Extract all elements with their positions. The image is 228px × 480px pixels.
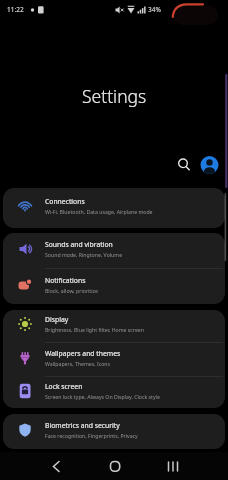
staticText: Wallpapers and themes [45, 349, 121, 358]
staticText: Connections [45, 197, 85, 206]
button[interactable] [44, 454, 68, 478]
button[interactable] [174, 154, 193, 173]
button[interactable]: Notifications [3, 269, 225, 304]
button[interactable]: Connections [3, 188, 225, 228]
staticText: 11:22 [7, 5, 24, 14]
button[interactable]: Lock screen [3, 377, 225, 408]
button[interactable] [161, 454, 185, 478]
staticText: Biometrics and security [45, 421, 120, 430]
staticText: Notifications [45, 276, 86, 285]
staticText: Settings [82, 84, 147, 108]
button[interactable]: Sounds and vibration [3, 233, 225, 268]
button[interactable] [200, 156, 219, 175]
button[interactable]: Biometrics and security [3, 414, 225, 449]
staticText: Block, allow, prioritize [45, 287, 98, 294]
staticText: Lock screen [45, 382, 83, 391]
staticText: Wi-Fi, Bluetooth, Data usage, Airplane m… [45, 208, 153, 215]
staticText: Wallpapers, Themes, Icons [45, 360, 110, 367]
staticText: 34% [148, 5, 161, 14]
button[interactable]: Display [3, 310, 225, 342]
staticText: Display [45, 315, 69, 324]
staticText: Face recognition, Fingerprints, Privacy [45, 432, 138, 439]
staticText: Sound mode, Ringtone, Volume [45, 251, 123, 258]
staticText: Screen lock type, Always On Display, Clo… [45, 393, 160, 400]
staticText: Brightness, Blue light filter, Home scre… [45, 326, 144, 333]
button[interactable] [103, 454, 127, 478]
button[interactable]: Wallpapers and themes [3, 343, 225, 376]
staticText: Sounds and vibration [45, 240, 113, 249]
